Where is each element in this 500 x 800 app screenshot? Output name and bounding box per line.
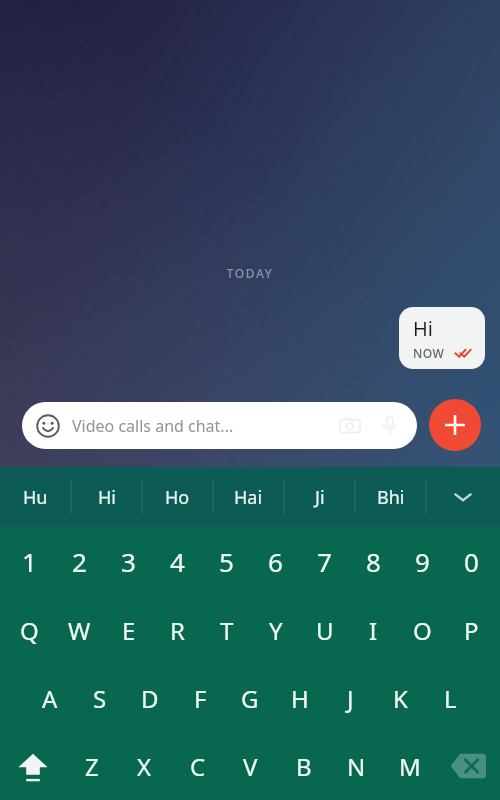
staticText: B: [296, 750, 312, 783]
button[interactable]: 7: [300, 527, 349, 596]
button[interactable]: H: [275, 664, 325, 732]
button[interactable]: N: [330, 732, 383, 800]
staticText: TODAY: [0, 265, 500, 281]
button[interactable]: 2: [54, 527, 104, 596]
staticText: J: [347, 682, 354, 715]
staticText: C: [190, 750, 206, 783]
button[interactable]: New message: [429, 399, 481, 451]
staticText: Hi: [413, 315, 433, 342]
button[interactable]: T: [202, 596, 251, 664]
button[interactable]: G: [225, 664, 275, 732]
button[interactable]: Hide suggestions: [426, 467, 500, 527]
button[interactable]: Y: [251, 596, 300, 664]
button[interactable]: 9: [398, 527, 447, 596]
button[interactable]: Q: [4, 596, 54, 664]
staticText: A: [42, 682, 58, 715]
staticText: Y: [269, 614, 283, 647]
staticText: 2: [72, 544, 87, 579]
button[interactable]: Backspace: [436, 732, 500, 800]
button[interactable]: J: [325, 664, 375, 732]
staticText: Bhi: [377, 485, 405, 510]
button[interactable]: Z: [65, 732, 118, 800]
staticText: 3: [121, 544, 136, 579]
button[interactable]: Camera: [337, 413, 363, 439]
button[interactable]: K: [375, 664, 425, 732]
button[interactable]: Emoji: [34, 412, 62, 440]
staticText: D: [141, 682, 159, 715]
staticText: Q: [20, 614, 39, 647]
button[interactable]: 1: [4, 527, 54, 596]
staticText: K: [393, 682, 408, 715]
button[interactable]: W: [54, 596, 104, 664]
button[interactable]: P: [447, 596, 496, 664]
staticText: 4: [170, 544, 185, 579]
staticText: Ji: [315, 485, 325, 510]
staticText: W: [68, 614, 91, 647]
button[interactable]: Shift: [0, 732, 65, 800]
staticText: 5: [219, 544, 234, 579]
button[interactable]: Emoji: [22, 402, 417, 449]
button[interactable]: M: [383, 732, 436, 800]
staticText: P: [464, 614, 479, 647]
button[interactable]: Hu: [0, 467, 71, 527]
button[interactable]: 3: [104, 527, 153, 596]
button[interactable]: X: [118, 732, 171, 800]
staticText: T: [220, 614, 234, 647]
staticText: Hu: [23, 485, 48, 510]
button[interactable]: B: [277, 732, 330, 800]
button[interactable]: Hi: [71, 467, 142, 527]
button[interactable]: Hai: [213, 467, 284, 527]
button[interactable]: A: [25, 664, 75, 732]
staticText: 9: [415, 544, 430, 579]
button[interactable]: U: [300, 596, 349, 664]
staticText: F: [194, 682, 207, 715]
button[interactable]: I: [349, 596, 398, 664]
staticText: U: [316, 614, 334, 647]
button[interactable]: L: [425, 664, 475, 732]
staticText: R: [170, 614, 185, 647]
staticText: S: [93, 682, 107, 715]
staticText: I: [369, 614, 378, 647]
staticText: V: [243, 750, 258, 783]
staticText: Z: [85, 750, 99, 783]
button[interactable]: Voice message: [377, 413, 403, 439]
button[interactable]: Hi: [399, 307, 485, 369]
staticText: 8: [366, 544, 381, 579]
staticText: 1: [22, 544, 37, 579]
staticText: 0: [464, 544, 479, 579]
staticText: N: [347, 750, 366, 783]
staticText: Hi: [98, 485, 116, 510]
button[interactable]: 4: [153, 527, 202, 596]
staticText: 6: [268, 544, 283, 579]
button[interactable]: R: [153, 596, 202, 664]
button[interactable]: F: [175, 664, 225, 732]
button[interactable]: 5: [202, 527, 251, 596]
staticText: E: [122, 614, 136, 647]
staticText: O: [413, 614, 432, 647]
staticText: Video calls and chat...: [72, 415, 337, 437]
button[interactable]: 8: [349, 527, 398, 596]
staticText: L: [444, 682, 457, 715]
staticText: Ho: [165, 485, 190, 510]
staticText: NOW: [413, 345, 445, 361]
staticText: G: [241, 682, 259, 715]
button[interactable]: D: [125, 664, 175, 732]
button[interactable]: Ho: [142, 467, 213, 527]
button[interactable]: Bhi: [355, 467, 426, 527]
staticText: M: [399, 750, 421, 783]
button[interactable]: 6: [251, 527, 300, 596]
staticText: H: [291, 682, 309, 715]
button[interactable]: E: [104, 596, 153, 664]
button[interactable]: S: [75, 664, 125, 732]
button[interactable]: V: [224, 732, 277, 800]
staticText: Hai: [234, 485, 263, 510]
button[interactable]: Ji: [284, 467, 355, 527]
button[interactable]: O: [398, 596, 447, 664]
staticText: 7: [317, 544, 332, 579]
button[interactable]: 0: [447, 527, 496, 596]
staticText: X: [137, 750, 152, 783]
button[interactable]: C: [171, 732, 224, 800]
